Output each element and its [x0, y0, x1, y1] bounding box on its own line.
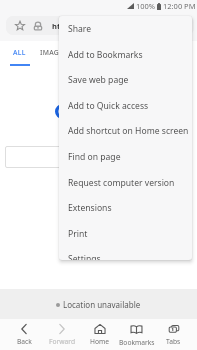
- staticText: Tabs: [166, 337, 181, 346]
- button[interactable]: Request computer version: [59, 170, 192, 196]
- button[interactable]: Settings: [59, 246, 192, 260]
- button[interactable]: Bookmark: [6, 16, 194, 35]
- staticText: Save web page: [68, 74, 129, 86]
- button[interactable]: IMAGES: [36, 41, 72, 63]
- button[interactable]: Add shortcut on Home screen: [59, 118, 192, 144]
- staticText: Request computer version: [68, 177, 175, 189]
- staticText: Location unavailable: [63, 299, 141, 310]
- staticText: 12:00 PM: [163, 1, 196, 11]
- staticText: Bookmarks: [119, 338, 155, 347]
- button[interactable]: Back: [5, 319, 43, 350]
- other: Back: [18, 323, 30, 335]
- other: Secure: [33, 21, 43, 31]
- button[interactable]: Forward: [43, 319, 81, 350]
- button[interactable]: Share: [59, 16, 192, 42]
- other: Bookmark: [15, 21, 25, 31]
- button[interactable]: Home: [81, 319, 118, 350]
- staticText: Back: [17, 337, 32, 346]
- staticText: IMAGES: [40, 48, 68, 57]
- staticText: 100%: [136, 1, 156, 11]
- staticText: ALL: [13, 48, 26, 57]
- other: Forward: [56, 323, 68, 335]
- staticText: Home: [90, 337, 110, 346]
- button[interactable]: Extensions: [59, 195, 192, 221]
- button[interactable]: Add to Bookmarks: [59, 42, 192, 68]
- staticText: Settings: [68, 253, 101, 260]
- button[interactable]: Tabs: [155, 319, 192, 350]
- staticText: Add to Quick access: [68, 100, 149, 112]
- staticText: Add shortcut on Home screen: [68, 125, 189, 137]
- staticText: Find on page: [68, 151, 121, 163]
- staticText: Add to Bookmarks: [68, 49, 143, 61]
- button[interactable]: Bookmarks: [118, 319, 155, 350]
- staticText: Forward: [49, 337, 76, 346]
- button[interactable]: Add to Quick access: [59, 93, 192, 119]
- staticText: ht: [52, 21, 61, 31]
- staticText: Share: [68, 23, 92, 35]
- button[interactable]: Print: [59, 221, 192, 247]
- staticText: Print: [68, 228, 88, 240]
- button[interactable]: Save web page: [59, 67, 192, 93]
- button[interactable]: Find on page: [59, 144, 192, 170]
- staticText: Extensions: [68, 202, 112, 214]
- button[interactable]: ALL: [2, 41, 36, 63]
